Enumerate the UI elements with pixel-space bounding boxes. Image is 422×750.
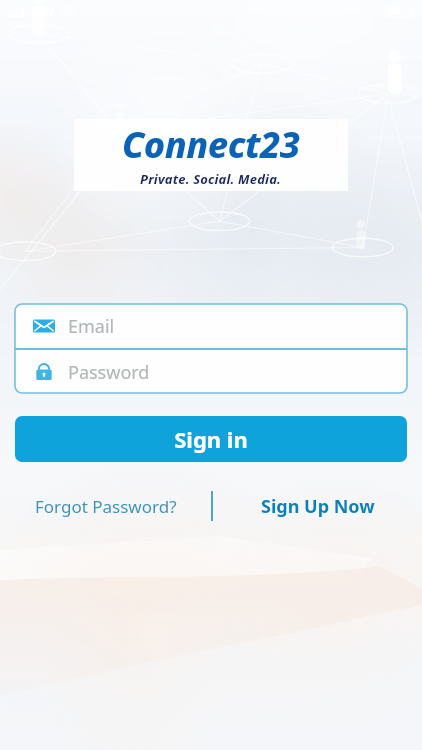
button[interactable]: Email [15,304,407,348]
button[interactable]: Password [15,350,407,394]
staticText: Email [68,314,115,339]
staticText: Sign Up Now [261,494,375,519]
staticText: Connect23 [122,120,300,169]
button[interactable]: Forgot Password? [0,489,211,523]
staticText: Forgot Password? [35,495,177,518]
staticText: Sign in [174,424,248,454]
button[interactable]: Sign in [15,416,407,462]
staticText: Password [68,360,150,385]
button[interactable]: Sign Up Now [213,489,422,523]
staticText: Private. Social. Media. [140,170,282,188]
